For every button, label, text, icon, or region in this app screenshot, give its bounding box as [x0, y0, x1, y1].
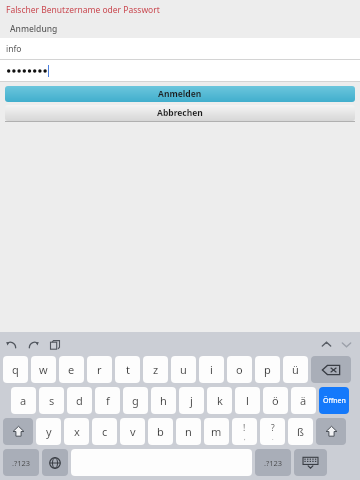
button[interactable]: d: [67, 387, 92, 414]
button[interactable]: r: [87, 356, 112, 383]
staticText: h: [160, 393, 167, 408]
button[interactable]: y: [36, 418, 61, 445]
button[interactable]: Previous field: [321, 339, 332, 350]
button[interactable]: s: [39, 387, 64, 414]
button[interactable]: h: [151, 387, 176, 414]
staticText: i: [210, 362, 213, 377]
staticText: a: [20, 393, 27, 408]
staticText: y: [46, 424, 52, 439]
staticText: q: [12, 362, 19, 377]
button[interactable]: n: [176, 418, 201, 445]
staticText: b: [157, 424, 164, 439]
other: Redo: [28, 339, 39, 350]
button[interactable]: g: [123, 387, 148, 414]
button[interactable]: u: [171, 356, 196, 383]
staticText: ä: [300, 393, 307, 408]
staticText: Öffnen: [323, 396, 346, 406]
staticText: u: [180, 362, 187, 377]
button[interactable]: z: [143, 356, 168, 383]
button[interactable]: q: [3, 356, 28, 383]
staticText: j: [190, 393, 193, 408]
staticText: .?123: [264, 458, 283, 468]
staticText: x: [74, 424, 80, 439]
button[interactable]: j: [179, 387, 204, 414]
other: Previous field: [321, 339, 332, 350]
button[interactable]: Hide keyboard: [294, 449, 327, 476]
staticText: Abbrechen: [157, 107, 203, 119]
staticText: p: [264, 362, 271, 377]
staticText: k: [217, 393, 223, 408]
button[interactable]: .?123: [3, 449, 39, 476]
staticText: c: [102, 424, 108, 439]
staticText: ü: [292, 362, 299, 377]
button[interactable]: Abbrechen: [5, 105, 355, 121]
button[interactable]: .?123: [255, 449, 291, 476]
button[interactable]: Anmelden: [5, 86, 355, 102]
button[interactable]: l: [235, 387, 260, 414]
staticText: m: [211, 424, 222, 439]
button[interactable]: t: [115, 356, 140, 383]
staticText: !: [243, 422, 246, 434]
button[interactable]: ö: [263, 387, 288, 414]
staticText: t: [126, 362, 130, 377]
button[interactable]: info: [0, 38, 360, 59]
staticText: ,: [244, 434, 246, 442]
staticText: f: [106, 393, 110, 408]
button[interactable]: [0, 60, 360, 81]
button[interactable]: p: [255, 356, 280, 383]
button[interactable]: x: [64, 418, 89, 445]
button[interactable]: f: [95, 387, 120, 414]
staticText: r: [97, 362, 102, 377]
staticText: z: [153, 362, 159, 377]
button[interactable]: ä: [291, 387, 316, 414]
button[interactable]: v: [120, 418, 145, 445]
button[interactable]: i: [199, 356, 224, 383]
button[interactable]: ?: [260, 418, 285, 445]
staticText: v: [130, 424, 136, 439]
button[interactable]: o: [227, 356, 252, 383]
staticText: Falscher Benutzername oder Passwort: [6, 4, 160, 16]
button[interactable]: !: [232, 418, 257, 445]
button[interactable]: Copy: [50, 340, 60, 350]
other: Undo: [6, 339, 17, 350]
staticText: l: [246, 393, 249, 408]
button[interactable]: k: [207, 387, 232, 414]
staticText: Anmeldung: [10, 23, 58, 35]
button[interactable]: Öffnen: [319, 387, 349, 414]
button[interactable]: Backspace: [311, 356, 351, 383]
button[interactable]: Undo: [6, 339, 17, 350]
staticText: e: [68, 362, 75, 377]
staticText: .?123: [12, 458, 31, 468]
button[interactable]: m: [204, 418, 229, 445]
staticText: ß: [297, 424, 304, 439]
staticText: Anmelden: [158, 88, 202, 100]
staticText: d: [76, 393, 83, 408]
other: Next field: [341, 339, 352, 350]
button[interactable]: Next field: [341, 339, 352, 350]
button[interactable]: c: [92, 418, 117, 445]
staticText: ?: [271, 422, 275, 434]
button[interactable]: a: [11, 387, 36, 414]
button[interactable]: Redo: [28, 339, 39, 350]
staticText: o: [236, 362, 243, 377]
other: Copy: [50, 340, 60, 350]
staticText: n: [185, 424, 192, 439]
button[interactable]: Shift: [3, 418, 33, 445]
staticText: ö: [272, 393, 279, 408]
staticText: s: [49, 393, 55, 408]
button[interactable]: Shift: [316, 418, 346, 445]
staticText: info: [6, 43, 22, 55]
staticText: .: [272, 434, 274, 442]
staticText: g: [132, 393, 139, 408]
button[interactable]: ß: [288, 418, 313, 445]
button[interactable]: e: [59, 356, 84, 383]
button[interactable]: Change language: [42, 449, 68, 476]
button[interactable]: b: [148, 418, 173, 445]
staticText: w: [39, 362, 48, 377]
button[interactable]: ü: [283, 356, 308, 383]
button[interactable]: w: [31, 356, 56, 383]
